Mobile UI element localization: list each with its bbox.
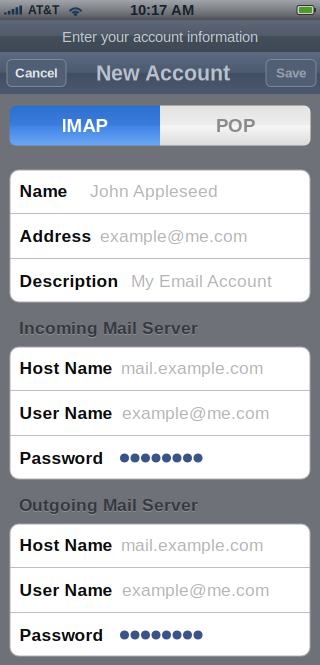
- button[interactable]: POP: [160, 105, 311, 146]
- staticText: Cancel: [15, 66, 58, 80]
- button[interactable]: Description: [10, 259, 310, 303]
- staticText: Password: [19, 448, 103, 468]
- staticText: Address: [19, 226, 91, 246]
- button[interactable]: Host Name: [10, 346, 310, 390]
- button[interactable]: Save: [266, 59, 316, 86]
- staticText: My Email Account: [131, 271, 272, 291]
- staticText: mail.example.com: [121, 535, 263, 555]
- button[interactable]: Cancel: [7, 59, 66, 86]
- staticText: John Appleseed: [90, 181, 218, 201]
- staticText: Outgoing Mail Server: [19, 496, 198, 516]
- button[interactable]: Password: [10, 436, 310, 480]
- staticText: User Name: [19, 403, 112, 423]
- button[interactable]: IMAP: [9, 105, 160, 146]
- staticText: AT&T: [28, 3, 59, 17]
- staticText: New Account: [96, 61, 230, 85]
- button[interactable]: User Name: [10, 568, 310, 612]
- staticText: example@me.com: [122, 580, 269, 600]
- button[interactable]: Address: [10, 214, 310, 258]
- staticText: mail.example.com: [121, 358, 263, 378]
- button[interactable]: Host Name: [10, 523, 310, 567]
- staticText: Incoming Mail Server: [19, 319, 198, 339]
- staticText: Enter your account information: [62, 29, 258, 45]
- button[interactable]: User Name: [10, 391, 310, 435]
- staticText: User Name: [19, 580, 112, 600]
- staticText: Password: [19, 625, 103, 645]
- staticText: POP: [216, 115, 255, 136]
- staticText: Description: [19, 271, 118, 291]
- staticText: IMAP: [61, 115, 107, 136]
- staticText: Incoming Mail Server: [19, 318, 198, 338]
- button[interactable]: Name: [10, 169, 310, 213]
- button[interactable]: Password: [10, 613, 310, 657]
- staticText: Outgoing Mail Server: [19, 495, 198, 515]
- staticText: Host Name: [19, 358, 112, 378]
- staticText: Name: [19, 181, 67, 201]
- staticText: example@me.com: [122, 403, 269, 423]
- staticText: example@me.com: [100, 226, 247, 246]
- staticText: Host Name: [19, 535, 112, 555]
- staticText: Save: [276, 66, 306, 80]
- staticText: 10:17 AM: [130, 2, 194, 18]
